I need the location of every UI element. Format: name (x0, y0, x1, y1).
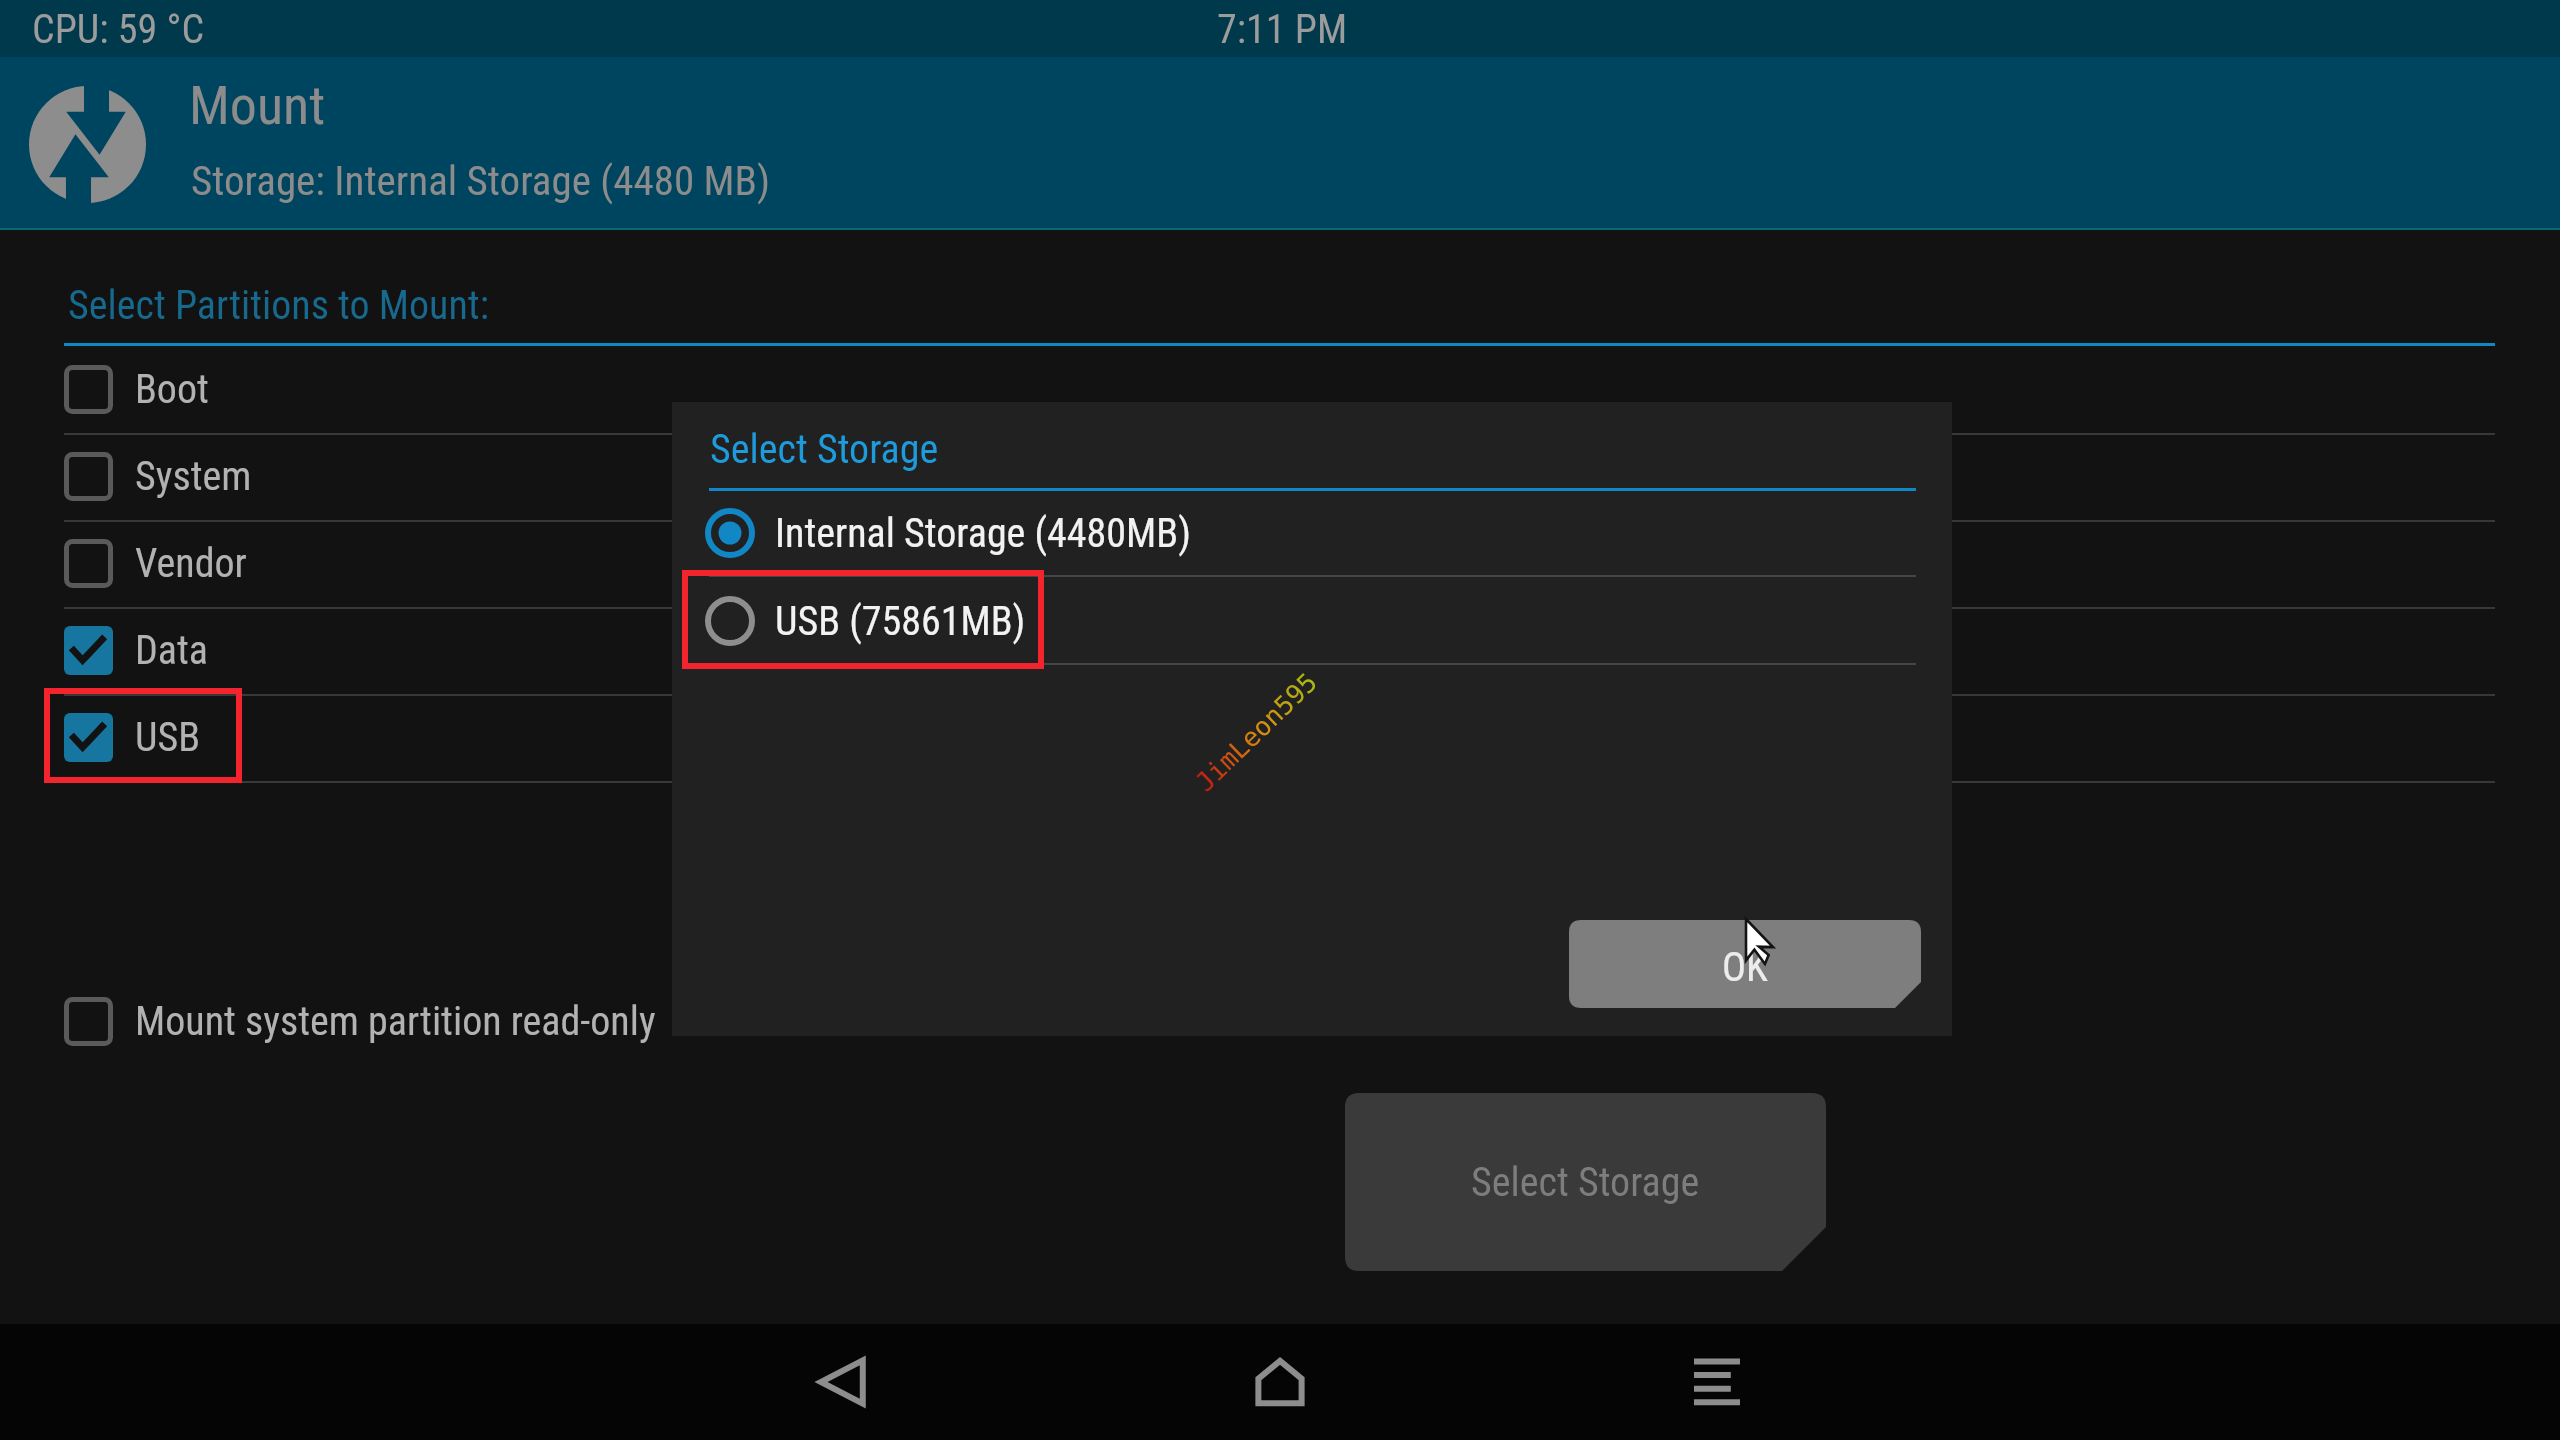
button[interactable]: Mount system partition read-only (64, 978, 764, 1065)
staticText: Mount (189, 74, 326, 137)
staticText: Data (135, 627, 208, 674)
button[interactable]: USB (64, 694, 2495, 781)
staticText: Select Partitions to Mount: (68, 282, 489, 329)
staticText: 7:11 PM (1217, 6, 1348, 53)
staticText: Select Storage (710, 426, 939, 473)
staticText: System (135, 453, 252, 500)
staticText: JimLeon595 (1190, 667, 1323, 797)
button[interactable]: USB (75861MB) (705, 577, 1916, 665)
button[interactable]: Select Storage (1345, 1093, 1826, 1271)
staticText: Internal Storage (4480MB) (775, 510, 1191, 557)
button[interactable]: Boot (64, 346, 2495, 433)
staticText: USB (75861MB) (775, 598, 1026, 645)
button[interactable]: System (64, 433, 2495, 520)
button[interactable]: Vendor (64, 520, 2495, 607)
staticText: OK (1722, 944, 1768, 991)
staticText: Storage: Internal Storage (4480 MB) (191, 157, 771, 205)
staticText: Select Storage (1471, 1159, 1700, 1206)
button[interactable]: Back (743, 1324, 943, 1440)
staticText: Vendor (135, 540, 247, 587)
staticText: Mount system partition read-only (135, 998, 656, 1045)
staticText: CPU: 59 °C (32, 6, 205, 53)
button[interactable]: OK (1569, 920, 1921, 1008)
button[interactable]: Internal Storage (4480MB) (705, 489, 1916, 577)
button[interactable]: Home (1180, 1324, 1380, 1440)
staticText: USB (135, 714, 201, 761)
button[interactable]: Data (64, 607, 2495, 694)
button[interactable]: Recent apps (1617, 1324, 1817, 1440)
staticText: Boot (135, 366, 209, 413)
